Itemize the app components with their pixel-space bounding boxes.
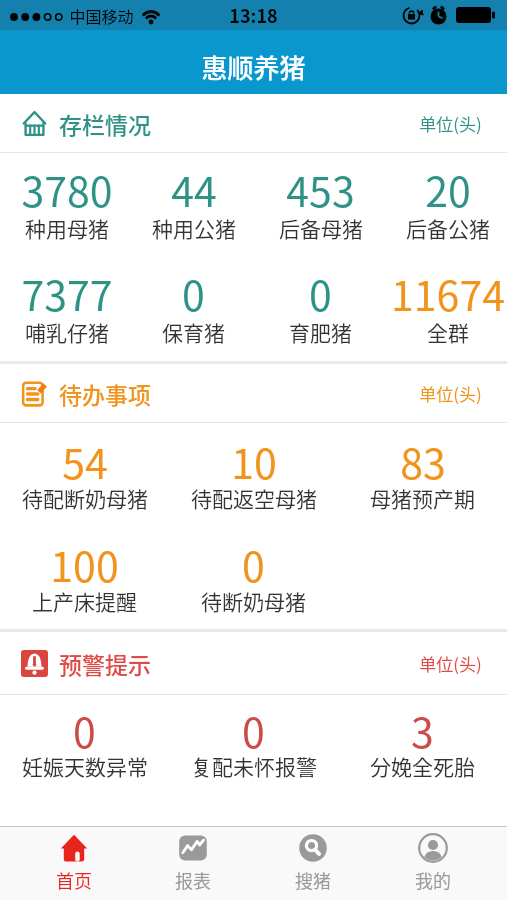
- button[interactable]: 7377: [4, 257, 130, 361]
- staticText: 待配返空母猪: [191, 483, 317, 513]
- staticText: 13:18: [229, 2, 278, 28]
- staticText: 44: [171, 159, 217, 218]
- button[interactable]: 20: [384, 153, 507, 257]
- button[interactable]: 我的: [373, 827, 493, 900]
- staticText: 育肥猪: [289, 317, 352, 347]
- staticText: 待断奶母猪: [201, 586, 306, 616]
- staticText: 待配断奶母猪: [22, 483, 148, 513]
- button[interactable]: 100: [0, 526, 169, 629]
- button[interactable]: 搜猪: [253, 827, 373, 900]
- staticText: 54: [62, 431, 108, 490]
- staticText: 报表: [175, 867, 211, 893]
- staticText: 后备母猪: [279, 213, 363, 243]
- staticText: 首页: [56, 867, 92, 893]
- staticText: 搜猪: [295, 867, 331, 893]
- button[interactable]: 存栏情况: [0, 94, 507, 152]
- staticText: 保育猪: [162, 317, 225, 347]
- button[interactable]: 453: [257, 153, 384, 257]
- staticText: 0: [73, 700, 96, 759]
- staticText: 哺乳仔猪: [25, 317, 109, 347]
- button[interactable]: 11674: [384, 257, 507, 361]
- staticText: 惠顺养猪: [201, 48, 306, 86]
- button[interactable]: 3780: [4, 153, 130, 257]
- staticText: 0: [182, 263, 205, 322]
- staticText: 复配未怀报警: [191, 751, 317, 781]
- button[interactable]: 0: [257, 257, 384, 361]
- staticText: 0: [242, 700, 265, 759]
- staticText: 11674: [391, 263, 505, 322]
- staticText: 0: [309, 263, 332, 322]
- staticText: 0: [242, 534, 265, 593]
- staticText: 20: [425, 159, 471, 218]
- staticText: 单位(头): [419, 111, 482, 136]
- staticText: 待办事项: [59, 377, 151, 410]
- staticText: 3780: [21, 159, 113, 218]
- button[interactable]: 0: [169, 695, 338, 800]
- staticText: 我的: [415, 867, 451, 893]
- staticText: 存栏情况: [59, 107, 151, 140]
- staticText: 妊娠天数异常: [22, 751, 148, 781]
- button[interactable]: 首页: [14, 827, 133, 900]
- staticText: 单位(头): [419, 381, 482, 406]
- button[interactable]: 10: [169, 423, 338, 526]
- staticText: 3: [411, 700, 434, 759]
- staticText: 453: [286, 159, 355, 218]
- staticText: 预警提示: [59, 647, 151, 680]
- staticText: 7377: [21, 263, 113, 322]
- button[interactable]: 3: [338, 695, 507, 800]
- staticText: 种用母猪: [25, 213, 109, 243]
- button[interactable]: 83: [338, 423, 507, 526]
- staticText: 后备公猪: [406, 213, 490, 243]
- staticText: 10: [231, 431, 277, 490]
- staticText: 83: [400, 431, 446, 490]
- staticText: 种用公猪: [152, 213, 236, 243]
- button[interactable]: 54: [0, 423, 169, 526]
- staticText: 全群: [427, 317, 469, 347]
- button[interactable]: 报表: [133, 827, 253, 900]
- button[interactable]: 0: [169, 526, 338, 629]
- button[interactable]: 44: [130, 153, 257, 257]
- staticText: 100: [50, 534, 119, 593]
- button[interactable]: 惠顺养猪: [0, 30, 507, 94]
- staticText: 母猪预产期: [370, 483, 475, 513]
- button[interactable]: 0: [0, 695, 169, 800]
- button[interactable]: 预警提示: [0, 632, 507, 694]
- staticText: 上产床提醒: [32, 586, 137, 616]
- staticText: 中国移动: [69, 4, 134, 27]
- staticText: 分娩全死胎: [370, 751, 475, 781]
- button[interactable]: 0: [130, 257, 257, 361]
- button[interactable]: 待办事项: [0, 364, 507, 422]
- staticText: 单位(头): [419, 651, 482, 676]
